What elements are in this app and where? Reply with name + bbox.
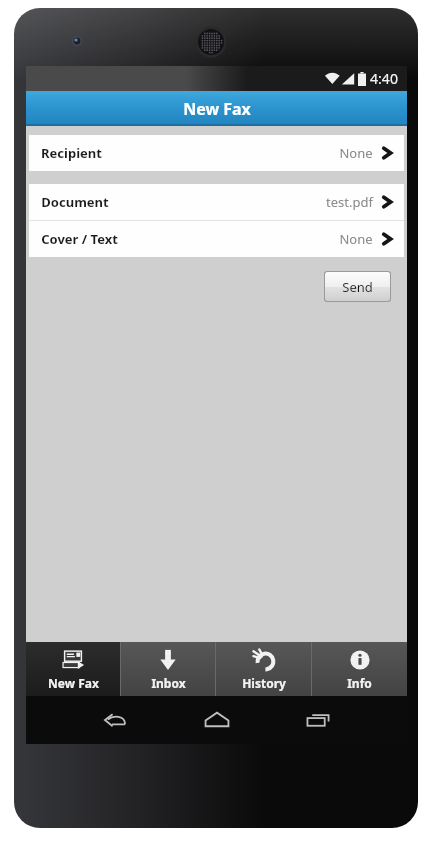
button[interactable]: New Fax — [26, 642, 120, 696]
staticText: 4:40 — [370, 69, 398, 88]
button[interactable]: Info — [312, 642, 407, 696]
other: Inbox — [156, 648, 180, 672]
button[interactable]: Send — [325, 272, 390, 301]
other: New Fax — [61, 648, 85, 672]
staticText: New Fax — [48, 675, 99, 691]
staticText: Info — [347, 675, 372, 691]
staticText: Send — [342, 278, 373, 296]
button[interactable]: Recent apps — [306, 708, 330, 732]
staticText: Cover / Text — [41, 230, 118, 248]
button[interactable]: Recipient — [29, 135, 404, 171]
other: History — [252, 648, 276, 672]
button[interactable]: Cover / Text — [29, 221, 404, 257]
staticText: Inbox — [151, 675, 186, 691]
button[interactable]: Home — [204, 707, 230, 733]
button[interactable]: History — [216, 642, 311, 696]
staticText: None — [339, 144, 373, 162]
staticText: Document — [41, 193, 109, 211]
other: Info — [348, 648, 372, 672]
button[interactable]: Document — [29, 184, 404, 220]
button[interactable]: Back — [103, 708, 127, 732]
staticText: test.pdf — [326, 193, 373, 211]
staticText: None — [339, 230, 373, 248]
staticText: History — [242, 675, 286, 691]
button[interactable]: Inbox — [121, 642, 215, 696]
staticText: Recipient — [41, 144, 102, 162]
staticText: New Fax — [183, 98, 251, 120]
